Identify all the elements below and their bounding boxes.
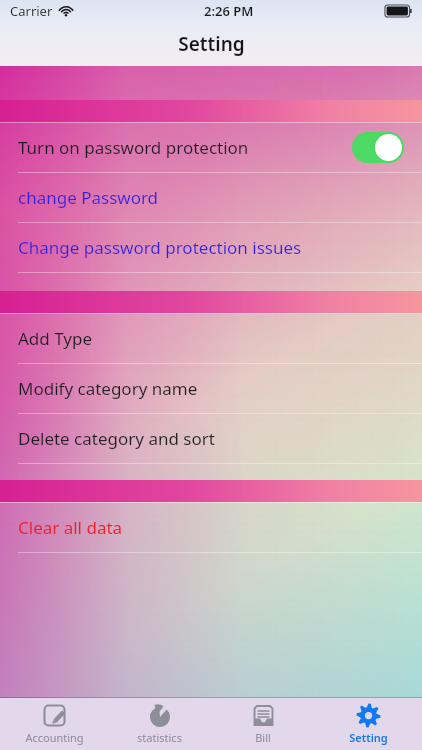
staticText: Add Type: [18, 327, 93, 350]
button[interactable]: Password protection toggle: [352, 132, 404, 163]
staticText: 2:26 PM: [204, 2, 254, 20]
staticText: Setting: [178, 31, 245, 57]
staticText: Clear all data: [18, 516, 123, 539]
button[interactable]: Bill: [213, 698, 313, 750]
button[interactable]: Accounting: [4, 698, 104, 750]
staticText: change Password: [18, 186, 159, 209]
button[interactable]: Turn on password protection: [0, 123, 422, 172]
staticText: Carrier: [10, 2, 53, 20]
staticText: Turn on password protection: [18, 136, 249, 159]
button[interactable]: Delete category and sort: [0, 414, 422, 463]
button[interactable]: Setting: [318, 698, 418, 750]
button[interactable]: Change password protection issues: [0, 223, 422, 272]
button[interactable]: Clear all data: [0, 503, 422, 552]
staticText: Modify category name: [18, 377, 198, 400]
staticText: statistics: [137, 730, 182, 745]
button[interactable]: statistics: [109, 698, 209, 750]
button[interactable]: change Password: [0, 173, 422, 222]
staticText: Bill: [255, 730, 271, 745]
button[interactable]: Modify category name: [0, 364, 422, 413]
staticText: Delete category and sort: [18, 427, 215, 450]
staticText: Change password protection issues: [18, 236, 302, 259]
staticText: Setting: [349, 730, 388, 745]
staticText: Accounting: [25, 730, 84, 745]
button[interactable]: Add Type: [0, 314, 422, 363]
